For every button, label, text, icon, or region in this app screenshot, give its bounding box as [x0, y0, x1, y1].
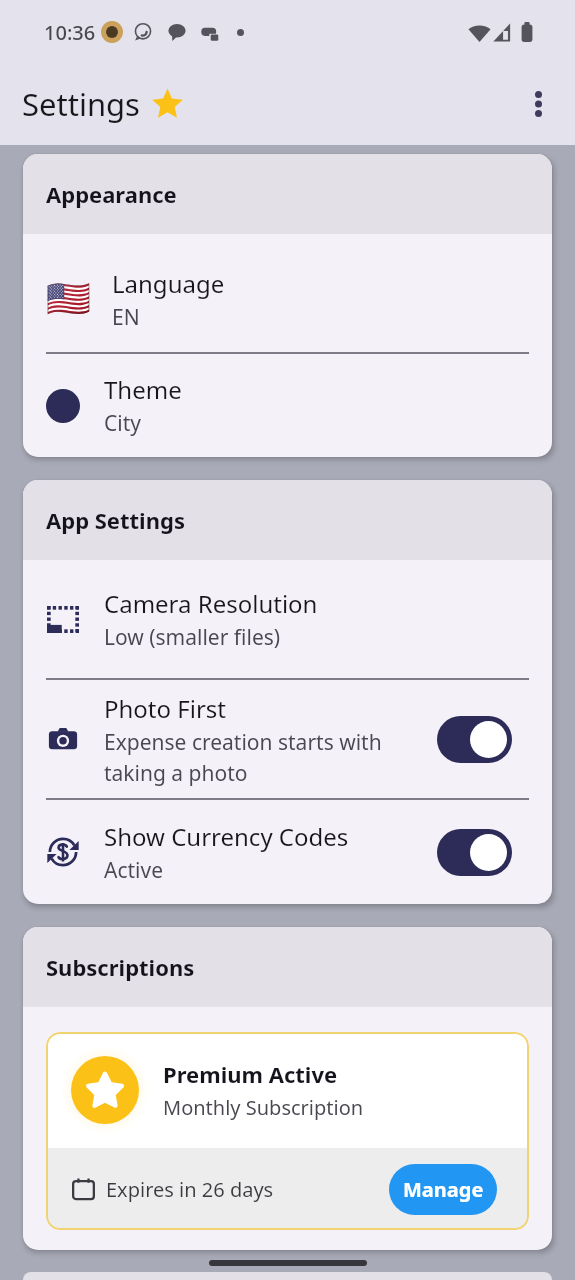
staticText: City [104, 409, 141, 438]
staticText: 🇺🇸 [46, 278, 90, 320]
staticText: Settings [22, 83, 140, 125]
button[interactable]: Photo First [23, 680, 552, 798]
button[interactable]: 🇺🇸 [23, 234, 552, 352]
button[interactable]: Show Currency Codes [23, 800, 552, 904]
staticText: Theme [104, 373, 182, 406]
button[interactable]: Theme [23, 354, 552, 457]
staticText: Expense creation starts with taking a ph… [104, 728, 394, 787]
staticText: App Settings [46, 505, 185, 535]
staticText: Low (smaller files) [104, 623, 281, 652]
staticText: Subscriptions [46, 952, 195, 982]
staticText: Monthly Subscription [163, 1094, 364, 1121]
staticText: Active [104, 856, 164, 885]
staticText: Appearance [46, 179, 177, 209]
staticText: EN [112, 303, 140, 332]
staticText: 10:36 [44, 19, 96, 46]
staticText: Premium Active [163, 1059, 338, 1089]
button[interactable]: Camera Resolution [23, 560, 552, 678]
staticText: Camera Resolution [104, 587, 318, 620]
staticText: Show Currency Codes [104, 820, 349, 853]
staticText: Photo First [104, 692, 227, 725]
button[interactable]: Toggle [437, 829, 512, 876]
button[interactable]: Toggle [437, 716, 512, 763]
button[interactable]: Manage [389, 1164, 497, 1215]
staticText: Manage [403, 1176, 484, 1203]
staticText: Expires in 26 days [106, 1176, 274, 1203]
staticText: Language [112, 267, 225, 300]
button[interactable]: More options [513, 79, 563, 129]
